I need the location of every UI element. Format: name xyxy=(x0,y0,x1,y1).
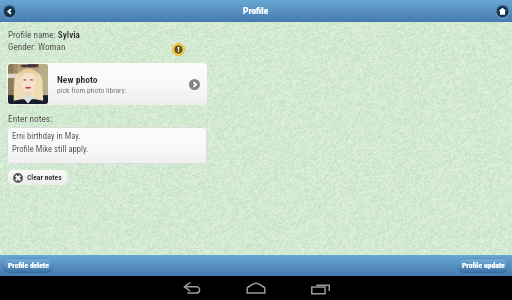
staticText: Erni birthday in May. xyxy=(12,131,81,141)
staticText: Enter notes: xyxy=(8,113,53,124)
button[interactable]: Erni birthday in May. xyxy=(7,127,207,164)
button[interactable]: Back xyxy=(2,4,17,19)
button[interactable]: New photo xyxy=(7,63,207,105)
staticText: New photo xyxy=(57,74,98,85)
staticText: Profile xyxy=(243,5,269,16)
button[interactable]: Clear notes xyxy=(8,170,67,185)
button[interactable]: Recent apps xyxy=(300,276,340,300)
staticText: Gender: Woman xyxy=(8,41,66,52)
button[interactable]: Back xyxy=(172,276,212,300)
staticText: Profile update xyxy=(462,261,505,270)
staticText: Profile Mike still apply. xyxy=(12,144,89,154)
button[interactable]: Home xyxy=(495,4,510,19)
staticText: Profile name: Sylvia xyxy=(8,29,80,40)
staticText: Profile delete xyxy=(8,261,49,270)
button[interactable]: Profile update xyxy=(457,258,509,273)
button[interactable]: Information xyxy=(172,43,185,56)
button[interactable]: Home xyxy=(236,276,276,300)
staticText: Clear notes xyxy=(27,173,62,182)
staticText: pick from photo library: xyxy=(57,86,127,95)
button[interactable]: Profile delete xyxy=(2,258,54,273)
button[interactable]: Open photo library xyxy=(189,79,200,90)
